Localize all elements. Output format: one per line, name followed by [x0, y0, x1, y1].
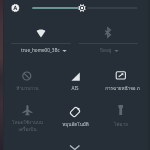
staticText: true_home00_3Bc: [21, 47, 60, 53]
staticText: ห้ามรบกวน: [16, 85, 39, 92]
button[interactable]: Auto rotate: [53, 96, 97, 130]
button[interactable]: Mobile data AIS: [53, 62, 97, 94]
staticText: เครื่องบิน: [18, 126, 37, 133]
button[interactable]: Bluetooth off: [76, 20, 142, 54]
button[interactable]: Airplane mode: [6, 96, 50, 130]
staticText: หมุนอัตโนมัติ: [62, 121, 89, 128]
staticText: ปิดอยู่: [100, 47, 112, 54]
button[interactable]: Wi-Fi true_home00_3Bc: [8, 20, 72, 54]
button[interactable]: Screen cast: [100, 62, 144, 94]
staticText: โหมดใช้งานบน: [12, 119, 43, 126]
button[interactable]: Do not disturb: [6, 62, 50, 94]
button[interactable]: Brightness: [6, 0, 146, 19]
staticText: การฉายหน้าจอ ภ: [105, 85, 140, 92]
staticText: AIS: [71, 85, 79, 91]
button[interactable]: Flashlight: [100, 96, 144, 130]
button[interactable]: Expand quick settings: [60, 138, 90, 150]
staticText: ไฟฉาย: [114, 121, 128, 128]
